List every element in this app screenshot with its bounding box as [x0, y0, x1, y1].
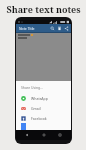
- button[interactable]: Delete: [56, 25, 63, 32]
- button[interactable]: [16, 123, 71, 130]
- button[interactable]: Share: [63, 25, 70, 32]
- staticText: Facebook: [31, 116, 47, 121]
- staticText: Note Title: [19, 26, 35, 31]
- button[interactable]: WhatsApp: [16, 93, 71, 103]
- staticText: Share Using...: [21, 85, 43, 90]
- staticText: WhatsApp: [31, 96, 48, 101]
- staticText: Gmail: [31, 106, 41, 111]
- staticText: Share text notes: [6, 3, 81, 15]
- button[interactable]: Back: [22, 130, 32, 140]
- button[interactable]: Search: [49, 25, 56, 32]
- button[interactable]: Gmail: [16, 103, 71, 113]
- button[interactable]: Facebook: [16, 113, 71, 123]
- button[interactable]: Recents: [55, 130, 65, 140]
- button[interactable]: Note Title: [16, 24, 71, 32]
- button[interactable]: Home: [39, 130, 49, 140]
